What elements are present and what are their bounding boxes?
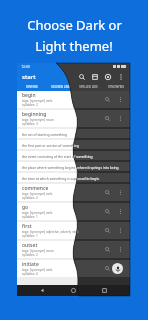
staticText: go — [22, 204, 29, 211]
button[interactable]: SYNONYMS — [102, 83, 130, 91]
button[interactable]: More — [116, 245, 125, 254]
button[interactable]: the time at which something is supposed … — [17, 173, 130, 182]
staticText: tags: [synonym] verb — [22, 99, 53, 103]
button[interactable]: the act of starting something — [17, 129, 130, 138]
button[interactable]: Back — [37, 285, 48, 296]
staticText: commence — [22, 185, 49, 192]
button[interactable]: More — [116, 207, 125, 216]
button[interactable]: beginning — [17, 110, 130, 127]
button[interactable]: commence — [17, 184, 130, 201]
staticText: initiate — [22, 261, 39, 268]
button[interactable]: Home — [68, 285, 79, 296]
button[interactable]: the place where something begins, where … — [17, 162, 130, 171]
button[interactable]: REVERSE — [17, 83, 46, 91]
button[interactable]: commence — [17, 184, 130, 201]
button[interactable]: SPELLED LIKE — [74, 83, 102, 91]
button[interactable]: More — [116, 95, 125, 104]
staticText: syllables: 1 — [22, 215, 38, 219]
button[interactable]: History — [90, 72, 99, 81]
button[interactable]: Favorite — [103, 188, 112, 197]
staticText: go — [22, 204, 29, 211]
staticText: tags: [synonym] verb — [22, 192, 53, 196]
staticText: syllables: 3 — [22, 122, 38, 126]
button[interactable]: Favorite — [103, 207, 112, 216]
button[interactable]: the act of starting something — [17, 129, 130, 138]
button[interactable]: Favorite — [103, 114, 112, 123]
button[interactable]: Search — [77, 72, 86, 81]
button[interactable]: Theme — [103, 72, 112, 81]
button[interactable]: Favorite — [103, 245, 112, 254]
staticText: initiate — [22, 261, 39, 268]
button[interactable]: SYNONYMS — [102, 83, 130, 91]
button[interactable]: SOUNDS LIKE — [46, 83, 74, 91]
button[interactable]: SOUNDS LIKE — [46, 83, 74, 91]
button[interactable]: More — [116, 264, 125, 273]
staticText: the act of starting something — [22, 132, 68, 136]
staticText: tags: [synonym] verb — [22, 211, 53, 215]
staticText: the place where something begins, where … — [22, 165, 119, 169]
button[interactable]: More — [116, 245, 125, 254]
button[interactable]: Theme — [103, 72, 112, 81]
button[interactable]: Back — [37, 285, 48, 296]
button[interactable]: first — [17, 222, 130, 239]
button[interactable]: the place where something begins, where … — [17, 162, 130, 171]
button[interactable]: More — [116, 188, 125, 197]
button[interactable]: More options — [116, 72, 125, 81]
button[interactable]: Favorite — [103, 114, 112, 123]
button[interactable]: the first part or section of something — [17, 140, 130, 149]
button[interactable]: Speak word — [112, 263, 123, 274]
button[interactable]: Recents — [99, 285, 110, 296]
button[interactable]: Speak word — [112, 263, 123, 274]
staticText: syllables: 2 — [22, 196, 38, 200]
button[interactable]: the first part or section of something — [17, 140, 130, 149]
button[interactable]: SPELLED LIKE — [74, 83, 102, 91]
staticText: the time at which something is supposed … — [22, 176, 100, 180]
button[interactable]: Recents — [99, 285, 110, 296]
button[interactable]: Favorite — [103, 264, 112, 273]
button[interactable]: More — [116, 226, 125, 235]
staticText: syllables: 1 — [22, 234, 38, 238]
button[interactable]: initiate — [17, 260, 130, 277]
button[interactable]: Favorite — [103, 226, 112, 235]
staticText: REVERSE — [26, 85, 38, 89]
button[interactable]: More — [116, 114, 125, 123]
button[interactable]: REVERSE — [17, 83, 46, 91]
staticText: beginning — [22, 111, 47, 118]
staticText: begin — [22, 92, 36, 99]
staticText: tags: [synonym] noun — [22, 118, 54, 122]
button[interactable]: beginning — [17, 110, 130, 127]
button[interactable]: go — [17, 203, 130, 220]
button[interactable]: Favorite — [103, 264, 112, 273]
button[interactable]: Favorite — [103, 188, 112, 197]
button[interactable]: initiate — [17, 260, 130, 277]
button[interactable]: outset — [17, 241, 130, 258]
staticText: 12:00 — [21, 64, 30, 69]
staticText: tags: [synonym] verb — [22, 268, 53, 272]
button[interactable]: More — [116, 264, 125, 273]
button[interactable]: More options — [116, 72, 125, 81]
button[interactable]: Favorite — [103, 245, 112, 254]
button[interactable]: Search — [77, 72, 86, 81]
staticText: tags: [synonym] verb — [22, 211, 53, 215]
button[interactable]: More — [116, 114, 125, 123]
button[interactable]: the event consisting of the start of som… — [17, 151, 130, 160]
button[interactable]: the event consisting of the start of som… — [17, 151, 130, 160]
button[interactable]: go — [17, 203, 130, 220]
staticText: begin — [22, 92, 36, 99]
button[interactable]: the time at which something is supposed … — [17, 173, 130, 182]
staticText: syllables: 2 — [22, 253, 38, 257]
button[interactable]: Favorite — [103, 95, 112, 104]
button[interactable]: Home — [68, 285, 79, 296]
button[interactable]: More — [116, 207, 125, 216]
button[interactable]: begin — [17, 91, 130, 108]
button[interactable]: History — [90, 72, 99, 81]
button[interactable]: More — [116, 226, 125, 235]
button[interactable]: Favorite — [103, 207, 112, 216]
button[interactable]: begin — [17, 91, 130, 108]
button[interactable]: More — [116, 95, 125, 104]
button[interactable]: Favorite — [103, 95, 112, 104]
button[interactable]: Favorite — [103, 226, 112, 235]
button[interactable]: first — [17, 222, 130, 239]
button[interactable]: outset — [17, 241, 130, 258]
button[interactable]: More — [116, 188, 125, 197]
